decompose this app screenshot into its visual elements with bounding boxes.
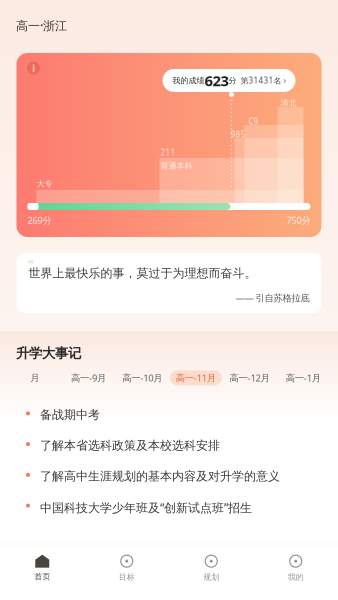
staticText: 第31431名 › [236, 75, 285, 86]
button[interactable]: 月 [8, 370, 62, 385]
button[interactable]: 规划 [169, 554, 253, 582]
staticText: 高一-10月 [122, 372, 162, 384]
staticText: 211 [160, 147, 175, 158]
staticText: 清北 [280, 98, 296, 108]
staticText: 中国科技大学少年班及“创新试点班”招生 [40, 500, 252, 515]
staticText: 世界上最快乐的事，莫过于为理想而奋斗。 [28, 266, 256, 281]
button[interactable]: 高一-12月 [223, 370, 276, 385]
staticText: C9 [248, 116, 258, 127]
staticText: 269分 [27, 214, 51, 226]
staticText: 我的 [288, 572, 304, 582]
staticText: —— 引自苏格拉底 [235, 292, 309, 304]
button[interactable]: 首页 [0, 555, 84, 581]
staticText: 月 [30, 372, 39, 384]
button[interactable]: 我的成绩 [162, 69, 295, 92]
staticText: i [32, 61, 35, 75]
staticText: 750分 [286, 214, 310, 226]
staticText: 了解本省选科政策及本校选科安排 [40, 438, 220, 453]
staticText: 高一·浙江 [16, 17, 67, 33]
button[interactable]: 高一-9月 [62, 370, 115, 385]
staticText: 高一-12月 [229, 372, 269, 384]
staticText: 目标 [119, 572, 135, 582]
button[interactable]: 高一-10月 [115, 370, 169, 385]
button[interactable]: 高一-11月 [169, 370, 223, 385]
staticText: 备战期中考 [40, 407, 100, 422]
button[interactable]: 我的 [253, 554, 338, 582]
staticText: 623 [204, 71, 228, 90]
staticText: 985 [230, 129, 245, 140]
staticText: 了解高中生涯规划的基本内容及对升学的意义 [40, 469, 280, 484]
staticText: 高一-1月 [286, 372, 321, 384]
staticText: 大专 [36, 179, 52, 189]
staticText: 首页 [34, 572, 50, 581]
button[interactable]: 说明 [26, 61, 40, 75]
staticText: 我的成绩 [172, 76, 204, 85]
staticText: ❝ [27, 257, 33, 271]
button[interactable]: 高一-1月 [276, 370, 330, 385]
staticText: 规划 [203, 572, 219, 582]
staticText: 高一-9月 [71, 372, 106, 384]
staticText: 分 [228, 76, 236, 85]
staticText: 普通本科 [160, 161, 192, 171]
staticText: 高一-11月 [176, 372, 216, 384]
button[interactable]: 目标 [84, 554, 169, 582]
staticText: 升学大事记 [16, 345, 81, 361]
